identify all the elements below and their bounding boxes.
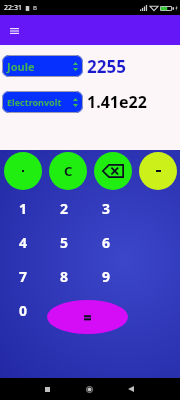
staticText: 5	[60, 233, 69, 252]
staticText: 2255	[87, 55, 126, 77]
staticText: 8	[60, 267, 69, 286]
staticText: Electronvolt	[7, 96, 62, 108]
staticText: 4	[19, 233, 28, 252]
staticText: 1	[19, 199, 28, 218]
staticText: 9	[102, 267, 111, 286]
button[interactable]: 4	[3, 225, 44, 259]
button[interactable]: 5	[44, 225, 85, 259]
button[interactable]: 8	[44, 259, 85, 293]
staticText: C	[64, 162, 73, 180]
button[interactable]: Back	[121, 379, 141, 399]
staticText: 3	[102, 199, 111, 218]
staticText: 1.41e22	[87, 91, 147, 113]
button[interactable]: Home	[79, 379, 99, 399]
button[interactable]: Backspace	[94, 152, 132, 190]
button[interactable]	[47, 300, 128, 334]
staticText: 22:31	[4, 3, 22, 13]
button[interactable]: 6	[85, 225, 127, 259]
button[interactable]: 0	[3, 293, 44, 327]
button[interactable]	[4, 152, 42, 190]
staticText: 6	[102, 233, 111, 252]
button[interactable]: 7	[3, 259, 44, 293]
button[interactable]: 3	[85, 191, 127, 225]
button[interactable]: 1	[3, 191, 44, 225]
staticText: 2	[60, 199, 69, 218]
button[interactable]: C	[49, 152, 87, 190]
button[interactable]: Electronvolt	[2, 91, 83, 113]
button[interactable]	[139, 152, 177, 190]
staticText: 0	[19, 301, 28, 320]
staticText: B	[33, 4, 37, 12]
button[interactable]: 2	[44, 191, 85, 225]
staticText: 7	[19, 267, 28, 286]
staticText: Joule	[7, 59, 35, 74]
button[interactable]: Open navigation menu	[2, 19, 26, 43]
button[interactable]: Joule	[2, 55, 83, 77]
button[interactable]: 9	[85, 259, 127, 293]
button[interactable]: Recent apps	[37, 379, 57, 399]
